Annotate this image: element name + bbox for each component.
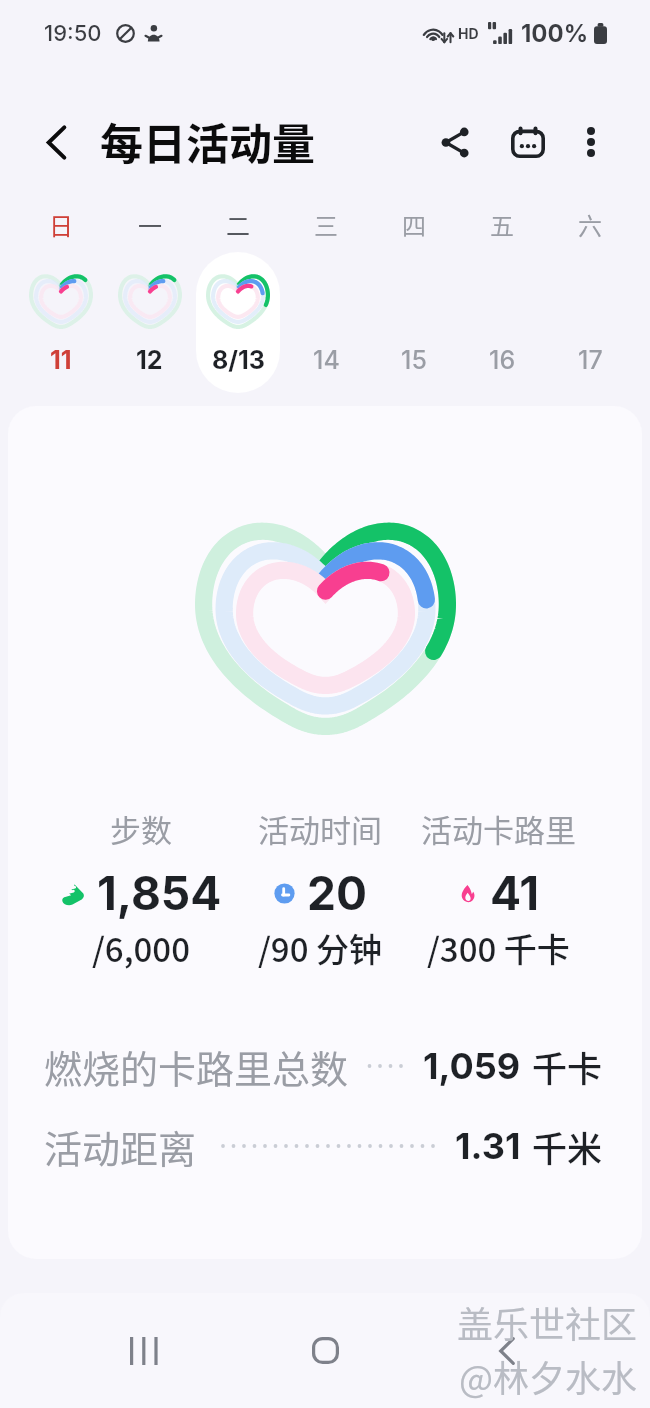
staticText: /6,000 <box>92 924 190 972</box>
button[interactable]: 日 <box>16 195 105 395</box>
staticText: 二 <box>226 207 250 242</box>
staticText: 六 <box>578 207 602 242</box>
staticText: 活动卡路里 <box>421 806 576 851</box>
staticText: 11 <box>50 345 72 375</box>
staticText: 8/13 <box>212 345 265 375</box>
staticText: 14 <box>313 345 340 375</box>
staticText: 12 <box>136 345 163 375</box>
staticText: 活动时间 <box>258 806 382 851</box>
staticText: 20 <box>307 865 367 921</box>
staticText: 19:50 <box>44 20 102 47</box>
button[interactable]: 活动时间 <box>230 806 409 972</box>
button[interactable]: Navigate up <box>22 108 90 176</box>
staticText: 千卡 <box>532 1041 603 1092</box>
button[interactable]: Back <box>416 1293 598 1408</box>
staticText: 17 <box>578 345 603 375</box>
button[interactable]: 一 <box>105 195 194 395</box>
button[interactable]: 步数 <box>52 806 230 972</box>
staticText: 每日活动量 <box>100 110 315 172</box>
staticText: 一 <box>138 207 162 242</box>
staticText: 步数 <box>110 806 172 851</box>
button[interactable]: 活动卡路里 <box>409 806 588 972</box>
staticText: @林夕水水 <box>459 1350 638 1402</box>
staticText: 1,059 <box>423 1044 521 1088</box>
button[interactable]: 四 <box>370 195 458 395</box>
button[interactable]: Share <box>421 108 489 176</box>
button[interactable]: 三 <box>282 195 370 395</box>
staticText: 五 <box>490 207 514 242</box>
button[interactable]: 燃烧的卡路里总数 <box>8 1031 642 1101</box>
button[interactable]: Recent apps <box>52 1293 234 1408</box>
button[interactable]: 五 <box>458 195 546 395</box>
staticText: 1,854 <box>97 865 222 921</box>
staticText: 41 <box>490 865 540 921</box>
staticText: 100% <box>521 19 589 48</box>
button[interactable]: 二 <box>194 195 282 395</box>
button[interactable]: 六 <box>546 195 634 395</box>
staticText: /90 分钟 <box>258 924 382 972</box>
staticText: 16 <box>489 345 516 375</box>
staticText: 日 <box>49 207 73 242</box>
staticText: 1.31 <box>455 1124 521 1168</box>
staticText: 15 <box>401 345 427 375</box>
staticText: HD <box>458 25 479 42</box>
staticText: 燃烧的卡路里总数 <box>44 1039 349 1094</box>
staticText: 四 <box>402 207 426 242</box>
staticText: /300 千卡 <box>427 924 570 972</box>
button[interactable]: Home <box>234 1293 416 1408</box>
staticText: 千米 <box>532 1121 603 1172</box>
staticText: 三 <box>314 207 338 242</box>
staticText: 活动距离 <box>44 1119 197 1174</box>
button[interactable]: More options <box>557 108 625 176</box>
staticText: 盖乐世社区 <box>457 1296 638 1348</box>
button[interactable]: 活动距离 <box>8 1111 642 1181</box>
button[interactable]: Calendar <box>494 108 562 176</box>
